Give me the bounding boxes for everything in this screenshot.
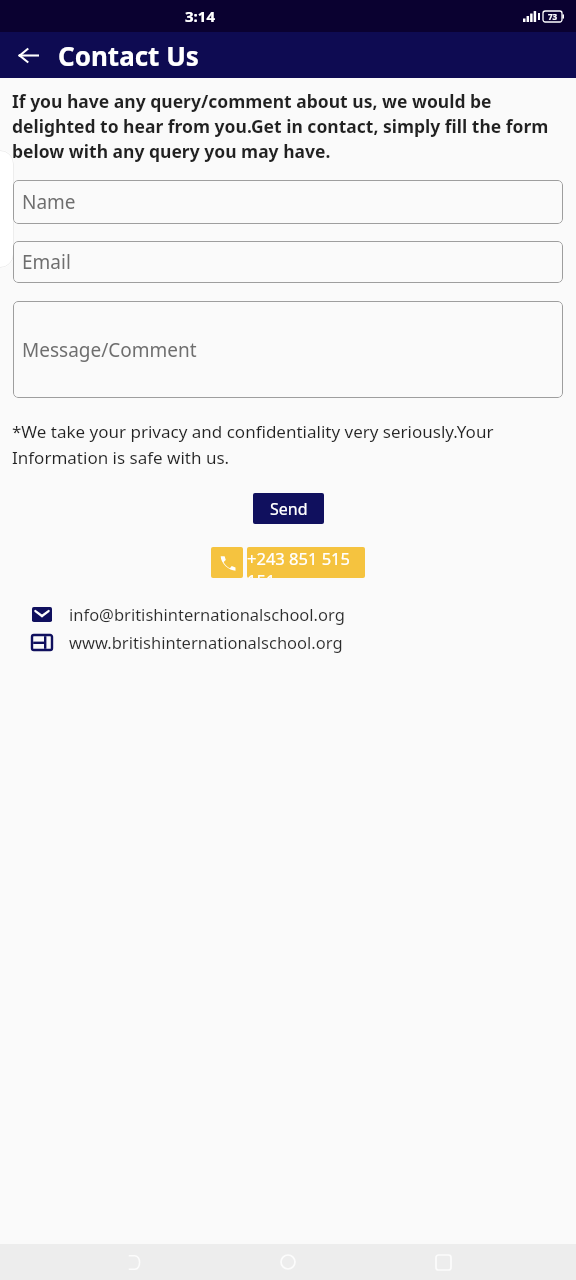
- staticText: Name: [22, 189, 76, 215]
- button[interactable]: Email: [13, 241, 563, 283]
- button[interactable]: Name: [13, 180, 563, 224]
- staticText: Send: [270, 498, 308, 520]
- button[interactable]: Message/Comment: [13, 301, 563, 398]
- staticText: Contact Us: [58, 38, 199, 73]
- staticText: info@britishinternationalschool.org: [69, 603, 345, 625]
- button[interactable]: +243 851 515 151: [247, 547, 365, 578]
- staticText: 73: [548, 11, 558, 22]
- staticText: *We take your privacy and confidentialit…: [12, 420, 562, 469]
- staticText: +243 851 515 151: [247, 547, 365, 578]
- button[interactable]: info@britishinternationalschool.org: [0, 603, 576, 625]
- staticText: www.britishinternationalschool.org: [69, 631, 343, 653]
- staticText: Message/Comment: [22, 337, 197, 363]
- button[interactable]: www.britishinternationalschool.org: [0, 631, 576, 653]
- button[interactable]: Back: [10, 37, 46, 73]
- button[interactable]: Send: [253, 493, 324, 524]
- button[interactable]: Recents: [421, 1244, 465, 1280]
- button[interactable]: Call: [211, 547, 243, 578]
- staticText: 3:14: [185, 6, 215, 26]
- staticText: Email: [22, 249, 71, 275]
- staticText: If you have any query/comment about us, …: [12, 89, 562, 163]
